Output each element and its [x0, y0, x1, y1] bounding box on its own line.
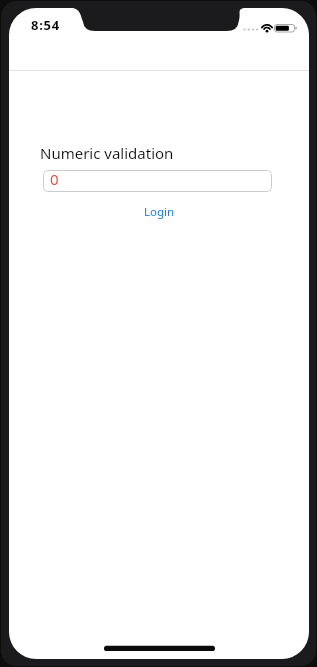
staticText: 8:54: [31, 16, 60, 34]
staticText: 0: [50, 169, 59, 189]
button[interactable]: [43, 170, 272, 192]
staticText: Login: [144, 204, 175, 220]
button[interactable]: Login: [143, 201, 175, 223]
staticText: Numeric validation: [40, 143, 174, 163]
